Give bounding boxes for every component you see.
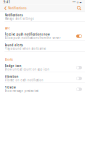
button[interactable]: Sound alerts	[0, 41, 85, 52]
button[interactable]: Badge icon	[0, 61, 85, 72]
button[interactable]: Receive push notifications now	[0, 30, 85, 41]
button[interactable]: Vibration	[0, 72, 85, 83]
staticText: Vibrate on each notification	[4, 78, 43, 82]
staticText: ••• ᯤ ▰	[72, 0, 81, 4]
staticText: Vibration	[4, 75, 18, 78]
staticText: 9:41	[4, 0, 11, 4]
staticText: Show unread count on app icon	[4, 68, 49, 71]
staticText: Sync	[4, 26, 9, 30]
staticText: Allow push notifications from the server	[4, 36, 60, 40]
staticText: Sound alerts	[4, 43, 22, 47]
button[interactable]: Search	[76, 5, 82, 12]
staticText: Badge icon	[4, 64, 21, 68]
button[interactable]: Back	[3, 5, 8, 12]
button[interactable]: Notifications	[0, 12, 85, 22]
staticText: Alerts	[4, 58, 12, 61]
staticText: Notifications	[4, 13, 22, 17]
button[interactable]: Preview	[0, 83, 85, 94]
staticText: Receive push notifications now	[4, 33, 49, 36]
staticText: Manage alert settings	[4, 17, 33, 20]
staticText: Show message preview text	[4, 89, 38, 93]
staticText: Play a sound when alerts arrive	[4, 47, 46, 50]
staticText: Preview	[4, 86, 15, 89]
staticText: Notifications	[8, 6, 26, 10]
